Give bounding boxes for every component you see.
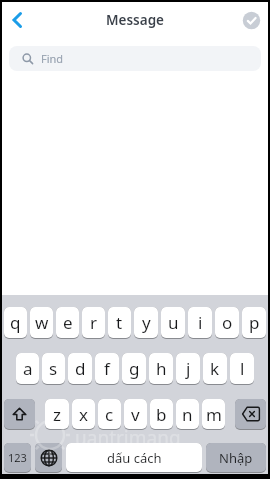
staticText: g xyxy=(129,357,140,380)
staticText: s xyxy=(49,357,58,380)
staticText: j xyxy=(186,357,191,380)
button[interactable] xyxy=(4,399,35,429)
button[interactable]: u xyxy=(161,307,185,338)
staticText: e xyxy=(63,311,73,334)
button[interactable]: dấu cách xyxy=(66,443,202,472)
button[interactable]: k xyxy=(203,353,227,384)
staticText: dấu cách xyxy=(107,449,162,467)
button[interactable]: r xyxy=(82,307,105,338)
button[interactable]: n xyxy=(176,399,199,429)
button[interactable]: b xyxy=(150,399,173,429)
staticText: p xyxy=(249,311,260,334)
staticText: w xyxy=(35,311,49,334)
staticText: f xyxy=(104,357,110,380)
button[interactable]: y xyxy=(134,307,158,338)
button[interactable]: x xyxy=(72,399,95,429)
button[interactable]: o xyxy=(215,307,239,338)
staticText: z xyxy=(53,403,61,426)
staticText: uantrimang xyxy=(75,425,181,451)
button[interactable]: f xyxy=(95,353,119,384)
button[interactable]: l xyxy=(230,353,254,384)
button[interactable]: z xyxy=(45,399,69,429)
staticText: b xyxy=(156,403,167,426)
button[interactable]: a xyxy=(16,353,39,384)
staticText: k xyxy=(210,357,220,380)
button[interactable]: v xyxy=(124,399,147,429)
button[interactable]: s xyxy=(42,353,65,384)
button[interactable]: j xyxy=(176,353,200,384)
staticText: a xyxy=(23,357,33,380)
button[interactable]: t xyxy=(108,307,131,338)
staticText: r xyxy=(90,311,98,334)
button[interactable]: m xyxy=(202,399,225,429)
staticText: m xyxy=(206,403,222,426)
button[interactable]: c xyxy=(98,399,121,429)
button[interactable]: g xyxy=(122,353,146,384)
button[interactable]: h xyxy=(149,353,173,384)
staticText: q xyxy=(10,311,21,334)
button[interactable] xyxy=(35,443,62,472)
staticText: n xyxy=(182,403,193,426)
staticText: u xyxy=(168,311,179,334)
button[interactable] xyxy=(235,399,266,429)
button[interactable]: Nhập xyxy=(206,443,266,472)
staticText: i xyxy=(198,311,203,334)
button[interactable]: i xyxy=(188,307,212,338)
staticText: o xyxy=(222,311,233,334)
staticText: t xyxy=(116,311,123,334)
staticText: x xyxy=(79,403,88,426)
staticText: Nhập xyxy=(219,449,253,467)
staticText: l xyxy=(240,357,245,380)
staticText: h xyxy=(156,357,167,380)
staticText: Message xyxy=(106,11,164,29)
button[interactable]: 123 xyxy=(4,443,31,472)
button[interactable]: q xyxy=(4,307,27,338)
staticText: 123 xyxy=(8,450,27,465)
staticText: c xyxy=(105,403,114,426)
button[interactable] xyxy=(242,11,261,30)
staticText: d xyxy=(75,357,86,380)
staticText: Find xyxy=(41,51,64,66)
button[interactable]: p xyxy=(242,307,266,338)
button[interactable] xyxy=(6,8,30,32)
button[interactable]: w xyxy=(30,307,53,338)
button[interactable]: d xyxy=(68,353,92,384)
button[interactable]: e xyxy=(56,307,79,338)
button[interactable]: Find xyxy=(9,46,261,71)
staticText: y xyxy=(142,311,151,334)
staticText: v xyxy=(131,403,140,426)
